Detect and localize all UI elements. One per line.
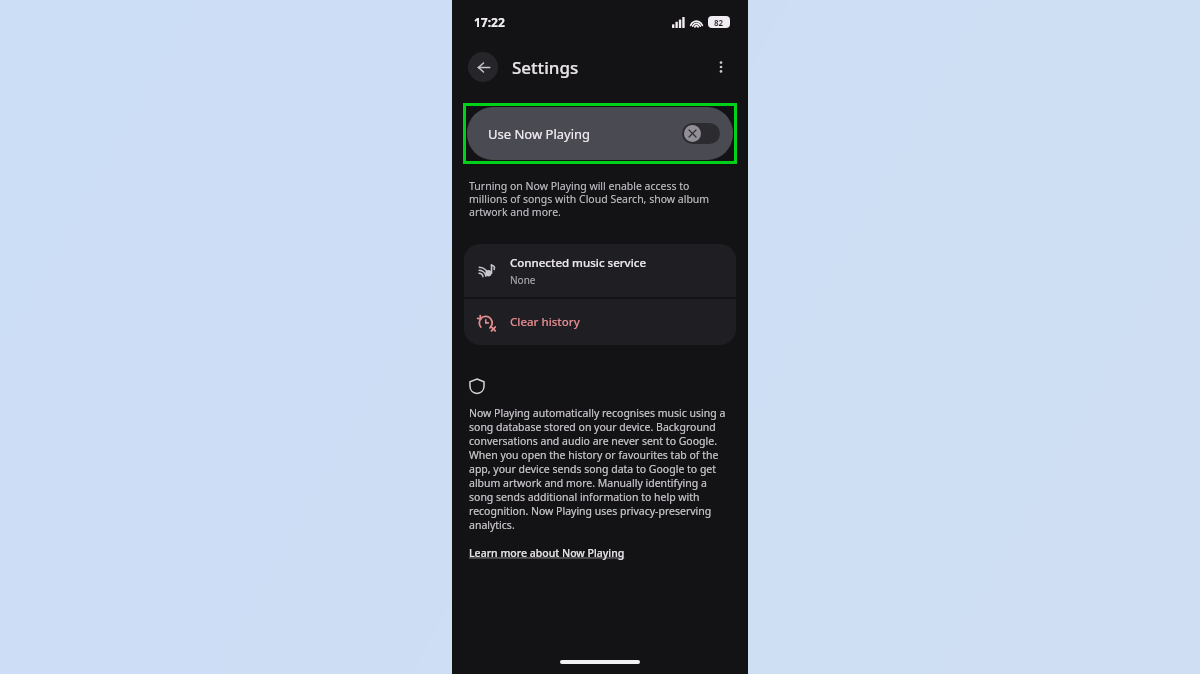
staticText: Clear history	[510, 314, 580, 330]
staticText: Turning on Now Playing will enable acces…	[469, 179, 724, 219]
button[interactable]: Use Now Playing	[467, 107, 733, 160]
button[interactable]: More options	[708, 54, 734, 80]
staticText: Connected music service	[510, 255, 647, 271]
button[interactable]: Back	[468, 52, 498, 82]
staticText: Now Playing automatically recognises mus…	[469, 406, 730, 532]
button[interactable]: Connected music service	[464, 244, 736, 297]
staticText: Settings	[512, 56, 579, 79]
staticText: Learn more about Now Playing	[469, 546, 625, 560]
staticText: 82	[714, 17, 724, 28]
staticText: 17:22	[474, 14, 505, 30]
staticText: None	[510, 273, 536, 287]
button[interactable]: Clear history	[464, 299, 736, 345]
staticText: Use Now Playing	[488, 125, 591, 143]
button[interactable]: Learn more about Now Playing	[469, 546, 625, 560]
button[interactable]: Use Now Playing toggle, off	[682, 123, 720, 144]
